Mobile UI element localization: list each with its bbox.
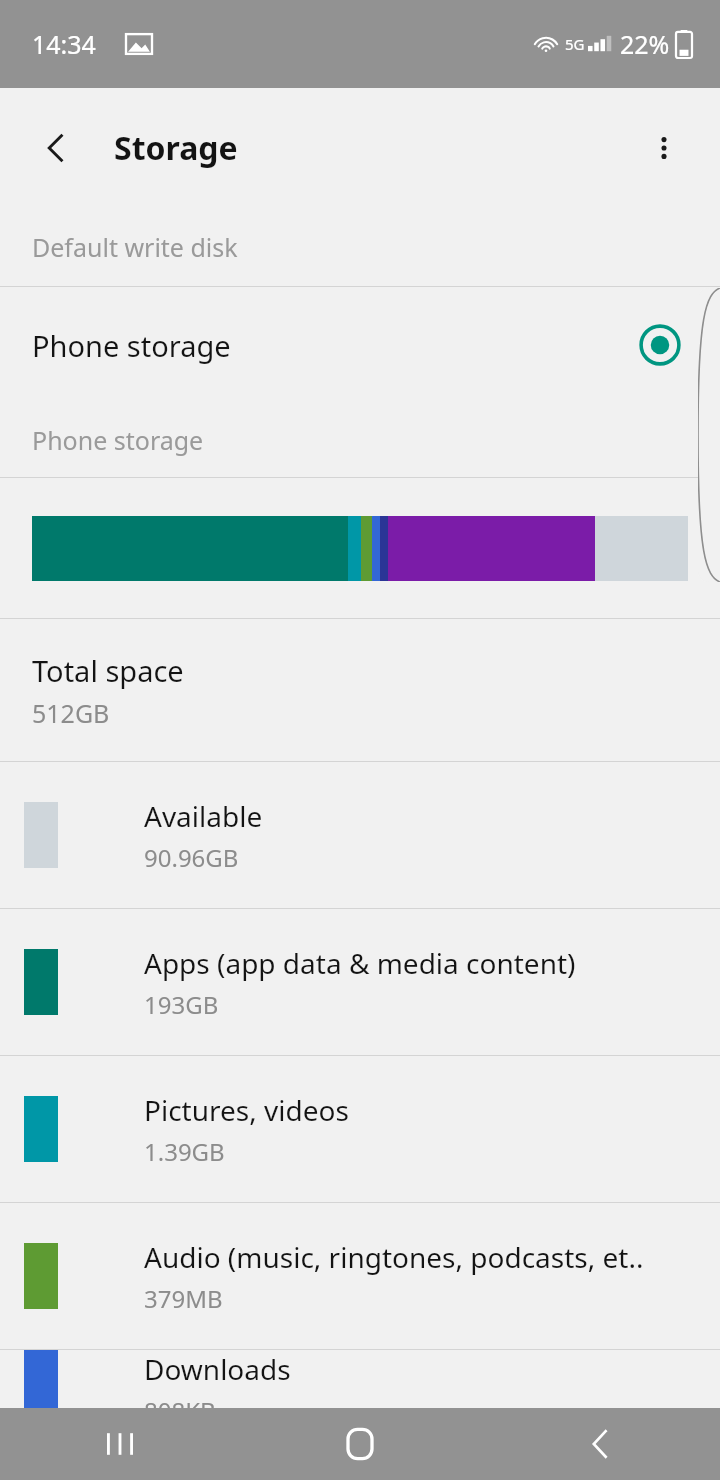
button[interactable]: Back bbox=[480, 1408, 720, 1480]
button[interactable]: Total space bbox=[0, 619, 720, 761]
button[interactable]: Recents bbox=[0, 1408, 240, 1480]
staticText: Phone storage bbox=[32, 423, 204, 457]
staticText: Pictures, videos bbox=[144, 1091, 349, 1129]
button[interactable]: Home bbox=[240, 1408, 480, 1480]
staticText: Phone storage bbox=[32, 326, 636, 365]
staticText: Storage bbox=[114, 126, 238, 170]
staticText: Apps (app data & media content) bbox=[144, 944, 576, 982]
button[interactable]: Pictures, videos bbox=[0, 1056, 720, 1202]
staticText: 1.39GB bbox=[144, 1135, 225, 1168]
button[interactable]: Available bbox=[0, 762, 720, 908]
staticText: 5G bbox=[565, 34, 585, 54]
button[interactable]: Apps (app data & media content) bbox=[0, 909, 720, 1055]
button[interactable]: Phone storage bbox=[0, 287, 720, 403]
staticText: 90.96GB bbox=[144, 841, 239, 874]
staticText: 379MB bbox=[144, 1282, 223, 1315]
staticText: Downloads bbox=[144, 1350, 291, 1388]
staticText: Default write disk bbox=[32, 230, 238, 264]
staticText: 22% bbox=[620, 27, 670, 61]
button[interactable]: Downloads bbox=[0, 1350, 720, 1408]
staticText: Available bbox=[144, 797, 263, 835]
staticText: 512GB bbox=[32, 696, 110, 730]
button[interactable]: Back bbox=[24, 116, 88, 180]
staticText: Total space bbox=[32, 651, 184, 690]
staticText: 14:34 bbox=[32, 27, 96, 61]
staticText: 808KB bbox=[144, 1394, 216, 1408]
staticText: 193GB bbox=[144, 988, 219, 1021]
button[interactable]: Audio (music, ringtones, podcasts, et.. bbox=[0, 1203, 720, 1349]
button[interactable]: More options bbox=[632, 116, 696, 180]
staticText: Audio (music, ringtones, podcasts, et.. bbox=[144, 1238, 644, 1276]
